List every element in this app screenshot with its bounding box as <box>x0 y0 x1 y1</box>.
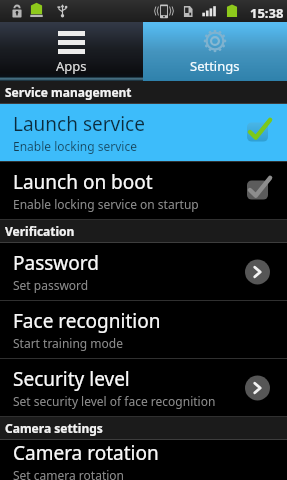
staticText: Set password <box>13 277 89 293</box>
other: Open <box>241 368 281 408</box>
staticText: Security level <box>13 366 130 392</box>
staticText: Apps <box>56 57 87 75</box>
other: Launch service enabled <box>241 113 281 153</box>
button[interactable]: Apps <box>0 22 143 81</box>
staticText: Verification <box>5 223 75 239</box>
staticText: Start training mode <box>13 335 123 351</box>
staticText: Set security level of face recognition <box>13 393 216 409</box>
button[interactable]: Settings <box>143 22 287 81</box>
staticText: Launch service <box>13 111 145 137</box>
button[interactable]: Camera rotation <box>0 440 287 480</box>
button[interactable]: Launch service <box>0 104 287 161</box>
staticText: Camera settings <box>5 420 103 436</box>
staticText: Face recognition <box>13 308 161 334</box>
staticText: Camera rotation <box>13 440 159 466</box>
button[interactable]: Face recognition <box>0 301 287 358</box>
staticText: Service management <box>5 84 132 100</box>
staticText: Launch on boot <box>13 169 153 195</box>
button[interactable]: Launch on boot <box>0 162 287 219</box>
other: Launch on boot disabled <box>241 171 281 211</box>
button[interactable]: Password <box>0 243 287 300</box>
staticText: Enable locking service on startup <box>13 196 199 212</box>
staticText: 15:38 <box>250 4 284 22</box>
button[interactable]: Security level <box>0 359 287 416</box>
staticText: Set camera rotation <box>13 467 125 480</box>
staticText: Enable locking service <box>13 138 137 154</box>
other: Open <box>241 252 281 292</box>
staticText: Settings <box>190 57 240 75</box>
staticText: Password <box>13 250 99 276</box>
